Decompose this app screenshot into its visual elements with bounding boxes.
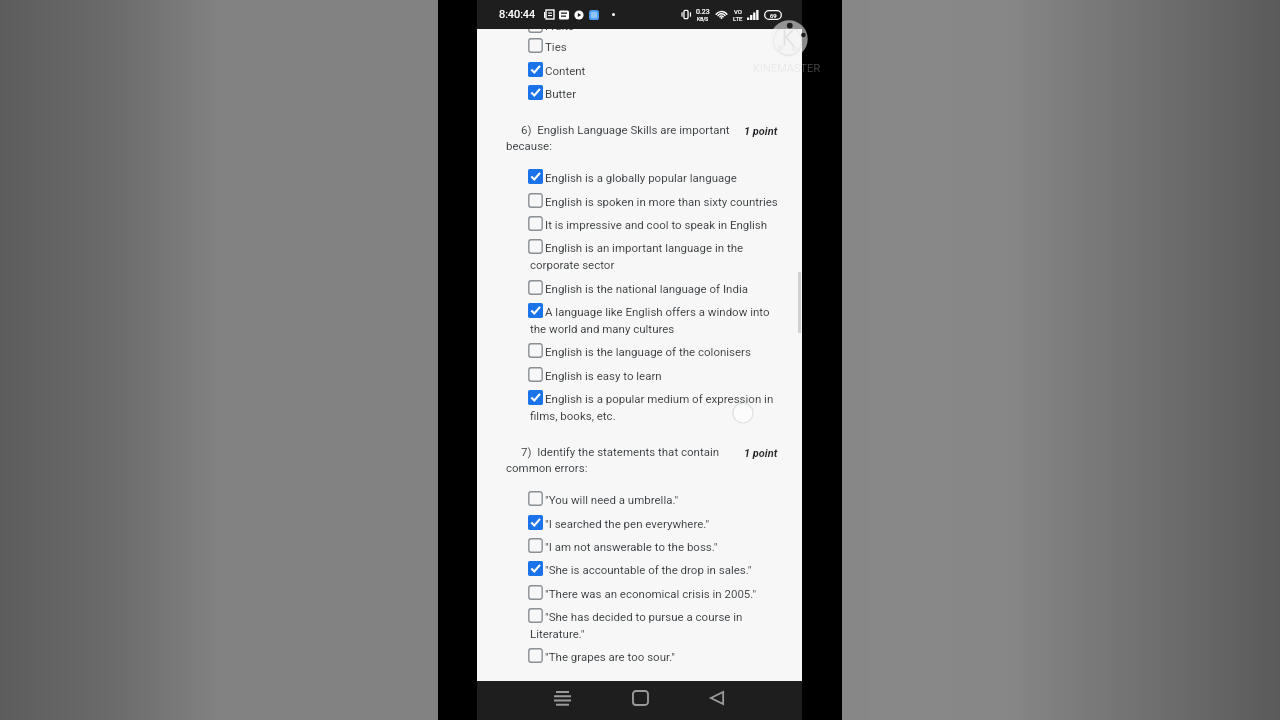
button[interactable]: Home — [623, 681, 657, 715]
staticText: "You will need a umbrella." — [530, 493, 780, 506]
button[interactable]: Ties — [528, 36, 780, 59]
button[interactable]: English is the language of the coloniser… — [528, 341, 780, 364]
staticText: 69 — [770, 12, 777, 19]
staticText: LTE — [733, 15, 743, 22]
staticText: Content — [530, 64, 780, 77]
button[interactable]: "There was an economical crisis in 2005.… — [528, 583, 780, 606]
staticText: "She is accountable of the drop in sales… — [530, 563, 780, 576]
staticText: KB/S — [697, 16, 709, 22]
button[interactable]: English is an important language in the … — [528, 237, 780, 278]
button[interactable]: Content — [528, 60, 780, 83]
staticText: 7) Identify the statements that contain … — [506, 445, 734, 475]
staticText: "There was an economical crisis in 2005.… — [530, 587, 780, 600]
button[interactable]: It is impressive and cool to speak in En… — [528, 214, 780, 237]
button[interactable]: English is the national language of Indi… — [528, 278, 780, 301]
staticText: "The grapes are too sour." — [530, 650, 780, 663]
staticText: Fruits — [545, 19, 574, 32]
button[interactable]: "You will need a umbrella." — [528, 489, 780, 512]
staticText: English is the language of the coloniser… — [530, 345, 780, 358]
button[interactable]: Recents — [545, 681, 579, 715]
staticText: 8:40:44 — [499, 8, 536, 21]
button[interactable]: "She has decided to pursue a course in L… — [528, 606, 780, 647]
button[interactable]: English is easy to learn — [528, 365, 780, 388]
staticText: English is a globally popular language — [530, 171, 780, 184]
staticText: 1 point — [744, 125, 778, 138]
button[interactable]: "She is accountable of the drop in sales… — [528, 559, 780, 582]
staticText: 0.23 — [696, 8, 710, 16]
button[interactable]: "The grapes are too sour." — [528, 646, 780, 669]
staticText: It is impressive and cool to speak in En… — [530, 218, 780, 231]
staticText: Butter — [530, 87, 780, 100]
staticText: KINEMASTER — [802, 62, 821, 75]
staticText: 6) English Language Skills are important… — [506, 123, 734, 153]
staticText: English is easy to learn — [530, 369, 780, 382]
staticText: A language like English offers a window … — [530, 305, 780, 336]
staticText: English is a popular medium of expressio… — [530, 392, 780, 423]
button[interactable]: "I searched the pen everywhere." — [528, 513, 780, 536]
button[interactable]: English is spoken in more than sixty cou… — [528, 191, 780, 214]
staticText: VO — [734, 8, 742, 15]
button[interactable]: "I am not answerable to the boss." — [528, 536, 780, 559]
staticText: "She has decided to pursue a course in L… — [530, 610, 780, 641]
staticText: "I am not answerable to the boss." — [530, 540, 780, 553]
staticText: English is the national language of Indi… — [530, 282, 780, 295]
staticText: English is spoken in more than sixty cou… — [530, 195, 780, 208]
staticText: KINEMASTER — [753, 62, 802, 75]
button[interactable]: English is a popular medium of expressio… — [528, 388, 780, 429]
button[interactable]: A language like English offers a window … — [528, 301, 780, 342]
staticText: "I searched the pen everywhere." — [530, 517, 780, 530]
staticText: Ties — [530, 40, 780, 53]
button[interactable]: Back — [700, 681, 734, 715]
button[interactable]: English is a globally popular language — [528, 167, 780, 190]
staticText: 1 point — [744, 447, 778, 460]
button[interactable]: Butter — [528, 83, 780, 106]
staticText: English is an important language in the … — [530, 241, 780, 272]
